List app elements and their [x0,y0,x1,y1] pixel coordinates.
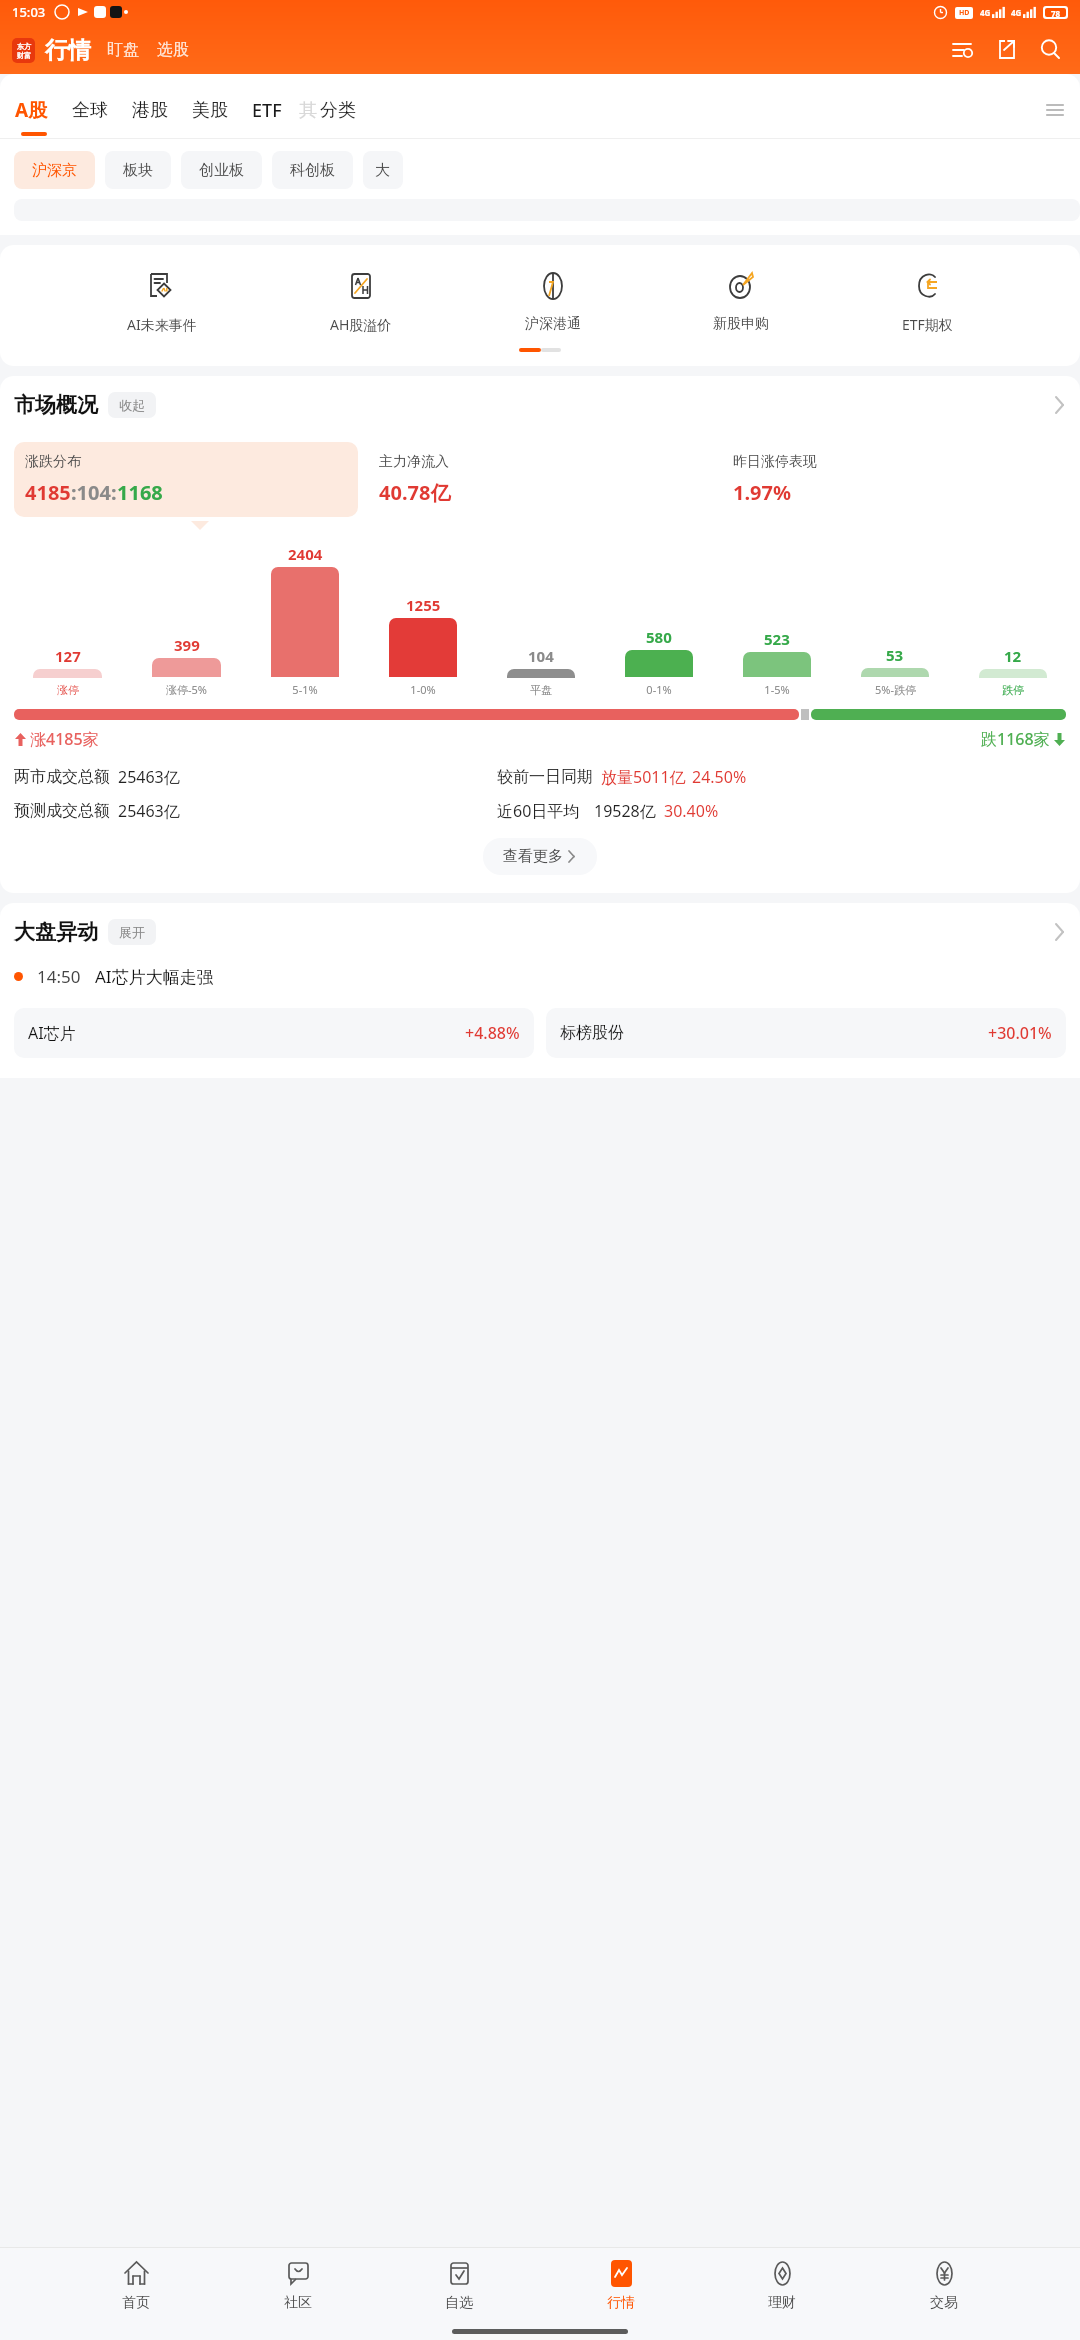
staticText: AH股溢价 [330,315,392,334]
staticText: 24.50% [692,766,747,788]
staticText: 78 [1051,8,1061,17]
staticText: 580 [646,627,672,647]
button[interactable]: 主力净流入 [368,442,712,517]
staticText: 1168 [117,479,163,506]
button[interactable]: 自选 [434,2254,484,2316]
staticText: 放量5011亿 [601,766,686,788]
staticText: 近60日平均 [497,800,580,822]
staticText: 399 [174,635,200,655]
button[interactable]: Share [990,33,1024,67]
button[interactable]: 标榜股份 [546,1008,1066,1058]
button[interactable]: 大 [363,151,403,189]
button[interactable]: AH股溢价 [324,265,398,336]
button[interactable]: 社区 [273,2254,323,2316]
staticText: 主力净流入 [379,453,449,471]
staticText: ETF [252,98,282,123]
button[interactable]: 昨日涨停表现 [722,442,1066,517]
button[interactable]: A股 [14,97,49,123]
button[interactable]: 行情 [45,36,91,65]
staticText: 展开 [119,924,145,940]
button[interactable]: 分类 [319,99,357,122]
button[interactable]: 全球 [71,99,109,122]
staticText: 跌停 [1002,683,1024,697]
staticText: 15:03 [12,3,46,21]
staticText: 科创板 [290,161,335,180]
staticText: 沪深京 [32,161,77,180]
button[interactable]: Search [1034,33,1068,67]
button[interactable]: 沪深京 [14,151,95,189]
button[interactable]: 板块 [105,151,171,189]
staticText: 5%-跌停 [875,682,916,697]
staticText: 涨跌分布 [25,453,81,471]
button[interactable]: ETF期权 [896,265,959,336]
button[interactable]: 展开 [108,919,156,945]
staticText: 美股 [192,99,228,122]
staticText: 自选 [445,2294,473,2312]
staticText: 沪深港通 [525,315,581,333]
staticText: 40.78亿 [379,479,451,506]
staticText: 两市成交总额 [14,767,110,787]
staticText: 行情 [45,36,91,65]
staticText: 预测成交总额 [14,801,110,821]
button[interactable]: 大盘异动 [0,903,1080,961]
button[interactable]: 行情 [596,2254,646,2316]
staticText: 涨4185家 [30,728,99,750]
button[interactable]: 选股 [155,40,191,60]
staticText: 涨停 [57,683,79,697]
button[interactable]: 港股 [131,99,169,122]
button[interactable]: 沪深港通 [519,265,587,335]
button[interactable]: 创业板 [181,151,262,189]
staticText: 4G [1011,7,1022,18]
staticText: 104 [528,646,554,666]
button[interactable]: More tabs [1040,95,1070,125]
staticText: 大盘异动 [14,919,98,945]
staticText: 12 [1004,646,1022,666]
button[interactable]: AI芯片 [14,1008,534,1058]
staticText: 新股申购 [713,315,769,333]
button[interactable]: 14:50 [0,961,1080,998]
staticText: A股 [15,97,48,123]
staticText: 创业板 [199,161,244,180]
button[interactable]: 查看更多 [483,838,597,875]
staticText: 东方 [17,42,31,51]
staticText: AI芯片大幅走强 [95,965,214,988]
staticText: :104: [71,479,117,506]
staticText: 53 [886,645,904,665]
button[interactable]: 盯盘 [105,40,141,60]
staticText: 港股 [132,99,168,122]
staticText: ETF期权 [902,315,953,334]
staticText: 标榜股份 [560,1023,624,1043]
staticText: +4.88% [465,1022,520,1044]
staticText: 4185 [25,479,71,506]
staticText: +30.01% [988,1022,1052,1044]
button[interactable]: AI未来事件 [121,265,203,336]
staticText: 全球 [72,99,108,122]
button[interactable]: 新股申购 [707,265,775,335]
staticText: 涨停-5% [166,682,207,697]
button[interactable]: 美股 [191,99,229,122]
staticText: 较前一日同期 [497,767,593,787]
button[interactable]: 收起 [108,392,156,418]
staticText: 127 [55,646,81,666]
button[interactable]: 首页 [111,2254,161,2316]
button[interactable]: 市场概况 [0,376,1080,434]
button[interactable]: 理财 [757,2254,807,2316]
button[interactable]: ETF [251,98,283,123]
staticText: 4G [980,7,991,18]
staticText: 523 [764,629,790,649]
staticText: 2404 [288,544,323,564]
button[interactable]: 交易 [919,2254,969,2316]
button[interactable]: 涨跌分布 [14,442,358,517]
staticText: 1255 [406,595,441,615]
staticText: 社区 [284,2294,312,2312]
button[interactable]: Settings list [946,33,980,67]
staticText: 行情 [607,2294,635,2312]
button[interactable]: 科创板 [272,151,353,189]
staticText: 市场概况 [14,392,98,418]
staticText: 跌1168家 [981,728,1050,750]
staticText: 板块 [123,161,153,180]
staticText: 19528亿 [594,800,656,822]
staticText: 盯盘 [107,40,139,60]
staticText: 25463亿 [118,800,180,822]
staticText: 大 [375,161,390,180]
